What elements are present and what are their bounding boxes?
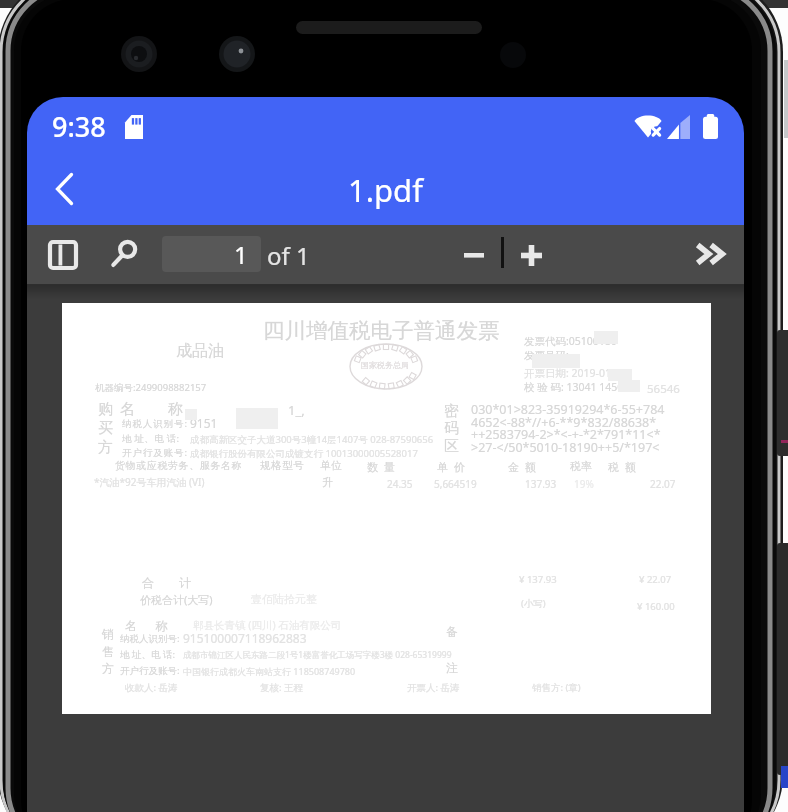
staticText: 发票代码:05100180 — [524, 334, 617, 348]
staticText: 密 — [444, 402, 459, 421]
staticText: ¥ 160.00 — [637, 600, 675, 613]
button[interactable]: Zoom in — [509, 233, 553, 277]
staticText: 030*01>823-35919294*6-55+784 — [471, 401, 665, 418]
button[interactable]: Sidebar — [41, 233, 85, 277]
staticText: 单 价 — [437, 459, 465, 474]
staticText: 购 — [98, 400, 113, 419]
staticText: 成都高新区交子大道300号3幢14层1407号 028-87590656 — [190, 433, 434, 446]
staticText: 915100007118962883 — [183, 630, 307, 646]
staticText: 1_, — [288, 401, 305, 419]
staticText: 纳税人识别号: — [122, 417, 188, 430]
staticText: 5,664519 — [434, 477, 477, 491]
staticText: 9:38 — [52, 108, 106, 145]
staticText: 24.35 — [387, 477, 413, 491]
staticText: 码 — [444, 419, 459, 438]
staticText: 名 — [120, 400, 135, 419]
staticText: 开户行及账号: — [120, 664, 180, 677]
staticText: 名 称 — [125, 617, 168, 633]
staticText: 地 址、电 话: — [120, 648, 175, 661]
staticText: 金 额 — [508, 459, 536, 474]
staticText: of 1 — [267, 239, 310, 272]
staticText: 137.93 — [525, 477, 557, 491]
staticText: 地 址、电 话: — [122, 432, 180, 445]
staticText: 22.07 — [650, 477, 676, 491]
staticText: ¥ 22.07 — [639, 573, 672, 586]
staticText: 备 — [446, 624, 458, 639]
staticText: 4652<-88*//+6-**9*832/88638* — [471, 414, 657, 431]
staticText: 销 — [102, 626, 114, 641]
staticText: 成都市锦江区人民东路二段1号1楼富誉化工场写字楼3楼 028-65319999 — [183, 649, 452, 661]
staticText: 开票人: 岳涛 — [407, 681, 460, 694]
staticText: 56546 — [647, 381, 680, 397]
staticText: 四川增值税电子普通发票 — [263, 317, 500, 344]
staticText: 发票号码: — [524, 348, 569, 362]
staticText: 价税合计(大写) — [140, 592, 213, 607]
button[interactable]: Search — [102, 233, 146, 277]
staticText: 1.pdf — [348, 169, 423, 211]
staticText: 单位 — [320, 459, 343, 472]
button[interactable]: Zoom out — [452, 233, 496, 277]
staticText: (小写) — [521, 597, 546, 610]
staticText: 国家税务总局 — [361, 360, 409, 370]
staticText: 复核: 王程 — [260, 681, 304, 694]
staticText: 9151 — [190, 415, 218, 431]
staticText: 税 额 — [608, 459, 636, 474]
staticText: 税率 — [570, 459, 592, 473]
staticText: 成都银行股份有限公司成镀支行 10013000005528017 — [190, 447, 418, 460]
staticText: 收款人: 岳涛 — [125, 681, 178, 694]
staticText: 规格型号 — [260, 459, 305, 472]
staticText: 售 — [102, 644, 114, 659]
staticText: >27-</50*5010-18190++5/*197< — [471, 439, 660, 456]
staticText: 数 量 — [367, 459, 395, 474]
staticText: 机器编号:2499098882157 — [95, 381, 207, 394]
staticText: 方 — [102, 661, 114, 676]
staticText: ++2583794-2>*<-+-*2*791*11<* — [471, 426, 661, 443]
staticText: 销售方: (章) — [532, 681, 581, 694]
staticText: 方 — [98, 438, 113, 457]
staticText: 校 验 码: 13041 1450 — [524, 380, 624, 394]
staticText: 区 — [444, 437, 459, 456]
staticText: 注 — [446, 660, 458, 675]
staticText: 合 计 — [142, 574, 191, 590]
staticText: 中国银行成都火车南站支行 118508749780 — [183, 665, 356, 677]
staticText: ¥ 137.93 — [519, 573, 557, 586]
button[interactable]: Back — [39, 164, 91, 216]
staticText: 开户行及账号: — [122, 446, 188, 459]
staticText: 称 — [168, 400, 183, 419]
staticText: 开票日期: 2019-01-14 — [524, 366, 627, 380]
button[interactable]: 1 — [162, 236, 261, 272]
staticText: 升 — [322, 475, 333, 489]
staticText: *汽油*92号车用汽油 (VI) — [94, 475, 205, 489]
staticText: 纳税人识别号: — [120, 632, 180, 645]
staticText: 成品油 — [176, 341, 224, 361]
staticText: 买 — [98, 419, 113, 438]
staticText: 壹佰陆拾元整 — [251, 592, 317, 606]
staticText: 1 — [234, 238, 248, 271]
staticText: 19% — [574, 477, 594, 491]
staticText: 货物或应税劳务、服务名称 — [115, 459, 243, 472]
staticText: 郫县长青镇 (四川) 石油有限公司 — [193, 618, 342, 632]
button[interactable]: More options — [686, 231, 734, 279]
